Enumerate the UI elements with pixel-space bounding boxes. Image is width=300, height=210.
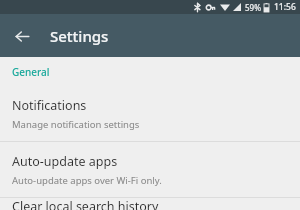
button[interactable]: Notifications [0, 86, 300, 141]
staticText: General [12, 65, 50, 79]
button[interactable]: Auto-update apps [0, 142, 300, 197]
button[interactable]: Back [9, 23, 35, 49]
staticText: Manage notification settings [12, 118, 140, 131]
staticText: 11:56 [274, 1, 296, 13]
staticText: Settings [50, 26, 109, 46]
staticText: Notifications [12, 97, 87, 114]
staticText: Clear local search history [12, 198, 159, 210]
button[interactable]: Clear local search history [0, 198, 300, 210]
staticText: 59% [245, 2, 261, 13]
staticText: Auto-update apps [12, 153, 118, 170]
staticText: Auto-update apps over Wi-Fi only. [12, 174, 162, 187]
